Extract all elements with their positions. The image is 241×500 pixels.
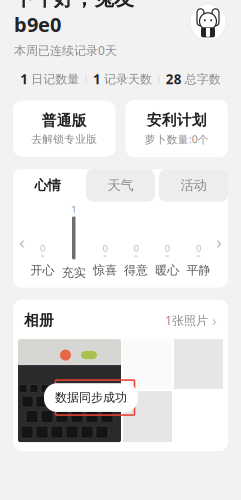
staticText: 萝卜数量:0个 xyxy=(145,132,209,146)
staticText: 日记数量 xyxy=(31,72,79,86)
staticText: 数据同步成功 xyxy=(55,390,127,405)
staticText: 去解锁专业版 xyxy=(31,133,97,146)
staticText: 平静 xyxy=(186,263,210,278)
staticText: 0 xyxy=(196,242,201,254)
staticText: 0 xyxy=(102,242,107,254)
staticText: ‹ xyxy=(19,229,25,254)
button[interactable]: 上一页 xyxy=(17,222,27,262)
staticText: 开心 xyxy=(31,263,55,278)
button[interactable]: 天气 xyxy=(86,169,155,202)
staticText: 1 xyxy=(93,70,101,88)
button[interactable]: 下一页 xyxy=(214,222,224,262)
button[interactable]: 安利计划 xyxy=(125,100,228,157)
staticText: 心情 xyxy=(34,177,60,194)
staticText: 活动 xyxy=(180,177,206,194)
staticText: 普通版 xyxy=(42,112,87,130)
staticText: 记录天数 xyxy=(104,72,152,86)
staticText: 下午好，兔友b9e0 xyxy=(14,0,134,37)
staticText: 1 xyxy=(71,203,76,215)
staticText: › xyxy=(208,311,217,330)
staticText: 0 xyxy=(165,242,170,254)
button[interactable]: 照片 xyxy=(18,339,121,442)
staticText: 相册 xyxy=(24,311,54,329)
button[interactable]: 心情 xyxy=(13,169,82,202)
button[interactable]: 相册 xyxy=(13,300,228,339)
staticText: 1 xyxy=(20,70,28,88)
staticText: 0 xyxy=(40,242,45,254)
staticText: 暖心 xyxy=(155,263,179,278)
staticText: › xyxy=(216,229,222,254)
staticText: 本周已连续记录0天 xyxy=(14,42,117,58)
staticText: 0 xyxy=(134,242,139,254)
button[interactable]: 活动 xyxy=(159,169,228,202)
staticText: 天气 xyxy=(107,177,133,194)
staticText: 28 xyxy=(166,70,182,88)
staticText: 总字数 xyxy=(185,72,221,86)
staticText: 得意 xyxy=(124,263,148,278)
staticText: 安利计划 xyxy=(147,111,207,129)
staticText: 1张照片 xyxy=(165,312,208,328)
button[interactable]: 头像 xyxy=(189,3,227,41)
button[interactable]: 普通版 xyxy=(13,101,115,157)
staticText: 惊喜 xyxy=(93,263,117,278)
staticText: 充实 xyxy=(62,265,86,280)
